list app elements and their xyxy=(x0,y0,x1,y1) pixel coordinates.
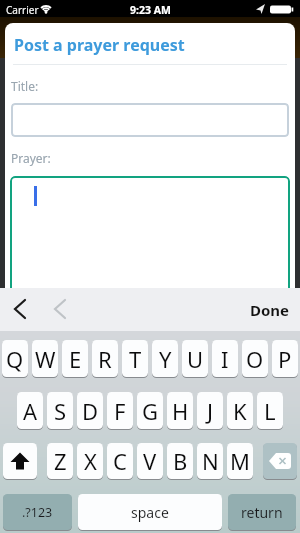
staticText: Title: xyxy=(11,78,39,94)
staticText: 9:23 AM xyxy=(130,3,171,17)
button[interactable]: F xyxy=(107,392,133,429)
staticText: Done xyxy=(250,300,290,320)
button[interactable]: H xyxy=(167,392,193,429)
staticText: G xyxy=(142,396,159,426)
button[interactable]: return xyxy=(228,494,296,530)
button[interactable]: M xyxy=(227,443,253,479)
staticText: X xyxy=(84,446,97,476)
button[interactable] xyxy=(50,296,74,322)
button[interactable]: R xyxy=(92,340,118,377)
button[interactable] xyxy=(10,176,290,288)
button[interactable]: space xyxy=(78,494,222,530)
button[interactable]: A xyxy=(17,392,43,429)
button[interactable]: X xyxy=(77,443,103,479)
button[interactable]: Q xyxy=(2,340,28,377)
staticText: O xyxy=(246,344,264,374)
staticText: A xyxy=(23,396,38,426)
staticText: R xyxy=(98,344,112,374)
staticText: B xyxy=(173,446,188,476)
staticText: Q xyxy=(6,344,24,374)
button[interactable]: O xyxy=(242,340,268,377)
staticText: E xyxy=(69,344,82,374)
button[interactable]: K xyxy=(227,392,253,429)
staticText: J xyxy=(207,396,214,426)
button[interactable]: E xyxy=(62,340,88,377)
staticText: I xyxy=(221,344,229,374)
staticText: Z xyxy=(54,446,67,476)
button[interactable]: Y xyxy=(152,340,178,377)
staticText: N xyxy=(202,446,219,476)
button[interactable]: G xyxy=(137,392,163,429)
staticText: L xyxy=(264,396,276,426)
button[interactable]: V xyxy=(137,443,163,479)
staticText: D xyxy=(82,396,99,426)
button[interactable]: I xyxy=(212,340,238,377)
button[interactable]: D xyxy=(77,392,103,429)
staticText: return xyxy=(241,503,283,522)
staticText: S xyxy=(54,396,67,426)
button[interactable] xyxy=(3,443,37,479)
staticText: M xyxy=(230,446,250,476)
staticText: F xyxy=(114,396,126,426)
button[interactable]: C xyxy=(107,443,133,479)
button[interactable]: U xyxy=(182,340,208,377)
staticText: K xyxy=(233,396,247,426)
staticText: P xyxy=(278,344,292,374)
button[interactable]: S xyxy=(47,392,73,429)
staticText: U xyxy=(187,344,204,374)
button[interactable]: Z xyxy=(47,443,73,479)
staticText: space xyxy=(131,503,169,522)
staticText: W xyxy=(35,344,56,374)
button[interactable] xyxy=(10,296,34,322)
button[interactable]: L xyxy=(257,392,283,429)
button[interactable]: J xyxy=(197,392,223,429)
staticText: C xyxy=(113,446,127,476)
staticText: Post a prayer request xyxy=(14,34,185,56)
staticText: .?123 xyxy=(22,504,53,521)
button[interactable] xyxy=(263,443,297,479)
staticText: Y xyxy=(159,344,172,374)
button[interactable]: N xyxy=(197,443,223,479)
button[interactable]: P xyxy=(272,340,298,377)
staticText: H xyxy=(172,396,189,426)
staticText: Carrier xyxy=(6,3,39,17)
button[interactable]: .?123 xyxy=(3,494,72,530)
button[interactable]: Done xyxy=(250,300,290,320)
staticText: Prayer: xyxy=(11,150,51,166)
staticText: V xyxy=(143,446,157,476)
button[interactable] xyxy=(11,103,289,137)
button[interactable]: W xyxy=(32,340,58,377)
staticText: T xyxy=(129,344,142,374)
button[interactable]: B xyxy=(167,443,193,479)
button[interactable]: T xyxy=(122,340,148,377)
